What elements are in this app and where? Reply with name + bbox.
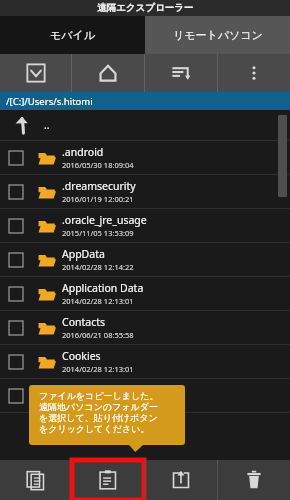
staticText: 2014/02/28 12:13:01 <box>62 296 134 306</box>
button[interactable]: Select .oracle_jre_usage <box>0 209 290 242</box>
button[interactable]: Up one level <box>0 110 290 140</box>
staticText: 遠隔エクスプローラー <box>97 2 194 14</box>
button[interactable]: リモートパソコン <box>145 16 290 54</box>
other: Select .android <box>0 141 32 174</box>
other: Select Application Data <box>0 277 32 310</box>
button[interactable]: Paste <box>72 460 144 500</box>
button[interactable]: More options <box>218 54 290 92</box>
staticText: Cookies <box>62 349 101 363</box>
staticText: Application Data <box>62 281 144 295</box>
other: Select Desktop <box>0 379 32 412</box>
staticText: ファイルをコピーしました。 <box>39 390 159 401</box>
staticText: /[C:]/Users/s.hitomi <box>6 95 93 108</box>
staticText: Contacts <box>62 315 106 329</box>
staticText: .android <box>62 145 104 159</box>
staticText: をクリックしてください。 <box>39 423 150 434</box>
staticText: 2016/06/21 08:55:58 <box>62 330 134 340</box>
staticText: Desktop <box>62 383 103 397</box>
button[interactable]: Move to folder <box>145 460 217 500</box>
staticText: AppData <box>62 247 105 261</box>
button[interactable]: Select Application Data <box>0 277 290 310</box>
button[interactable]: Sort <box>145 54 217 92</box>
button[interactable]: Select Desktop <box>0 379 290 412</box>
staticText: 2016/01/19 12:00:21 <box>62 194 134 204</box>
staticText: 2014/02/28 12:14:22 <box>62 262 134 272</box>
button[interactable]: Delete <box>218 460 290 500</box>
other: Up one level <box>0 110 44 140</box>
staticText: .dreamsecurity <box>62 179 136 193</box>
button[interactable]: Select all <box>0 54 71 92</box>
staticText: .oracle_jre_usage <box>62 213 147 227</box>
staticText: 2016/06/20 17:44:12 <box>62 398 134 408</box>
button[interactable]: Home <box>72 54 144 92</box>
other: Select AppData <box>0 243 32 276</box>
button[interactable]: Copy <box>0 460 71 500</box>
staticText: を選択して、貼り付けボタン <box>39 412 158 423</box>
other: Select Cookies <box>0 345 32 378</box>
staticText: 2016/05/30 18:09:04 <box>62 160 134 170</box>
button[interactable]: Select Contacts <box>0 311 290 344</box>
other: Select Contacts <box>0 311 32 344</box>
staticText: 遠隔地パソコンのフォルダー <box>39 401 158 412</box>
button[interactable]: Select Cookies <box>0 345 290 378</box>
staticText: 2015/11/05 13:53:09 <box>62 228 134 238</box>
staticText: .. <box>44 118 50 132</box>
staticText: 2014/02/28 12:13:01 <box>62 364 134 374</box>
button[interactable]: モバイル <box>0 16 145 54</box>
other: Select .oracle_jre_usage <box>0 209 32 242</box>
other: Select .dreamsecurity <box>0 175 32 208</box>
button[interactable]: Select .android <box>0 141 290 174</box>
button[interactable]: Select .dreamsecurity <box>0 175 290 208</box>
staticText: リモートパソコン <box>173 28 263 42</box>
staticText: モバイル <box>50 28 96 42</box>
button[interactable]: Select AppData <box>0 243 290 276</box>
